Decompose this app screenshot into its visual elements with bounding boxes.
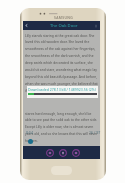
button[interactable]: Back <box>24 23 29 28</box>
button[interactable]: Back <box>23 21 100 30</box>
button[interactable]: Progress <box>28 139 33 144</box>
button[interactable]: Home <box>51 166 72 175</box>
staticText: Downloaded 278.13 kB / 1489923.56 (2%) <box>28 87 96 92</box>
button[interactable]: Downloaded 278.13 kB / 1489923.56 (2%) <box>27 86 98 98</box>
staticText: stares hard enough, long enough, she'd b… <box>25 111 98 143</box>
button[interactable]: Previous <box>46 149 54 157</box>
staticText: SAMSUNG <box>54 15 74 20</box>
staticText: Lilly stands staring at the great oak do… <box>25 33 98 93</box>
staticText: 16 / 97 <box>89 130 101 135</box>
button[interactable]: Play <box>59 149 67 157</box>
button[interactable]: Next <box>72 149 80 157</box>
staticText: 0:54 <box>26 130 34 135</box>
button[interactable]: More options <box>94 24 98 28</box>
staticText: The Oak Door <box>50 23 78 29</box>
